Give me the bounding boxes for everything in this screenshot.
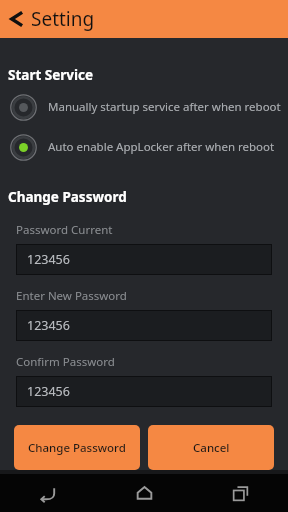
button[interactable]: Cancel (148, 425, 274, 470)
staticText: Confirm Password (16, 354, 115, 370)
button[interactable]: Change Password (14, 425, 140, 470)
button[interactable]: Home (96, 474, 192, 512)
staticText: Enter New Password (16, 288, 127, 304)
staticText: Auto enable AppLocker after when reboot (48, 139, 275, 155)
button[interactable]: Recent apps (192, 474, 288, 512)
staticText: Password Current (16, 222, 113, 238)
button[interactable]: 123456 (16, 376, 272, 407)
staticText: Manually startup service after when rebo… (48, 99, 281, 115)
staticText: Cancel (193, 440, 230, 456)
button[interactable]: 123456 (16, 310, 272, 341)
staticText: Start Service (8, 66, 94, 84)
staticText: 123456 (27, 317, 70, 334)
button[interactable]: Back (0, 0, 288, 38)
button[interactable]: Manually startup service after when rebo… (0, 92, 288, 122)
staticText: Change Password (8, 188, 127, 206)
staticText: Change Password (28, 440, 126, 456)
button[interactable]: Back (0, 474, 96, 512)
staticText: 123456 (27, 383, 70, 400)
staticText: Setting (31, 6, 95, 32)
button[interactable]: 123456 (16, 244, 272, 275)
staticText: 123456 (27, 251, 70, 268)
button[interactable]: Auto enable AppLocker after when reboot (0, 132, 288, 162)
